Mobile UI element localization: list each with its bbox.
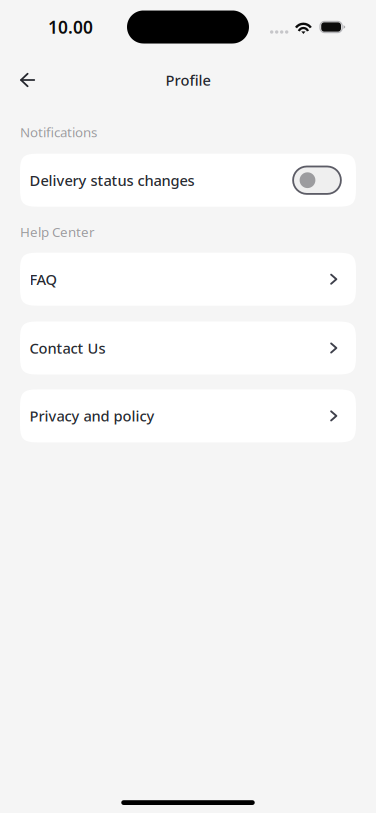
staticText: FAQ [30,269,57,289]
staticText: Notifications [20,123,97,141]
staticText: Profile [165,70,210,90]
button[interactable]: Delivery status changes [20,154,356,207]
button[interactable]: Back [0,62,49,98]
staticText: Contact Us [30,338,106,358]
staticText: Delivery status changes [30,170,195,190]
staticText: Help Center [20,223,95,241]
button[interactable]: FAQ [20,253,356,306]
staticText: Privacy and policy [30,406,155,426]
button[interactable]: Contact Us [20,321,356,374]
staticText: 10.00 [48,15,93,38]
button[interactable]: Privacy and policy [20,389,356,442]
